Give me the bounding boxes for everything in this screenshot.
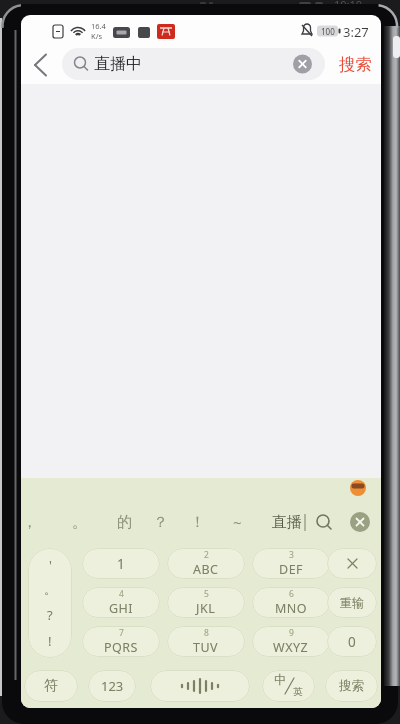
button[interactable] (327, 548, 377, 579)
button[interactable]: ~ (227, 504, 247, 540)
staticText: 英 (293, 686, 303, 698)
staticText: 。 (72, 513, 87, 532)
button[interactable]: 4 (82, 587, 160, 618)
button[interactable] (150, 670, 250, 702)
button[interactable]: 2 (167, 548, 245, 579)
staticText: 9 (289, 627, 294, 639)
staticText: ， (22, 513, 37, 532)
staticText: MNO (275, 600, 308, 617)
staticText: 。 (44, 582, 56, 597)
staticText: ~ (233, 512, 242, 532)
staticText: 8 (204, 627, 209, 639)
staticText: 10:10 (334, 0, 363, 11)
button[interactable]: 9 (252, 626, 330, 657)
button[interactable] (291, 53, 314, 76)
staticText: GHI (109, 600, 134, 617)
button[interactable]: 符 (24, 670, 78, 702)
staticText: 符 (44, 677, 58, 695)
staticText: 的 (117, 513, 132, 532)
button[interactable]: 1 (82, 548, 160, 579)
staticText: 100 (321, 26, 335, 37)
staticText: ' (49, 556, 52, 574)
staticText: JKL (196, 600, 216, 617)
staticText: TUV (193, 639, 219, 656)
staticText: 搜索 (339, 678, 364, 694)
staticText: ？ (153, 513, 168, 532)
staticText: 4 (119, 588, 124, 600)
staticText: 直播中 (94, 54, 142, 74)
staticText: PQRS (104, 639, 138, 656)
button[interactable]: 直播 (272, 504, 302, 540)
button[interactable]: 的 (114, 504, 134, 540)
button[interactable]: ？ (150, 504, 170, 540)
button[interactable] (349, 479, 367, 497)
button[interactable] (62, 48, 325, 80)
button[interactable]: 中 (262, 670, 315, 702)
staticText: ！ (190, 513, 205, 532)
staticText: 6 (289, 588, 294, 600)
staticText: ABC (193, 561, 219, 578)
button[interactable]: 5 (167, 587, 245, 618)
staticText: 搜索 (339, 54, 372, 75)
button[interactable]: ' (28, 548, 72, 658)
staticText: ! (48, 632, 52, 650)
button[interactable] (313, 510, 337, 534)
staticText: K/s (91, 31, 103, 41)
button[interactable]: 7 (82, 626, 160, 657)
staticText: WXYZ (273, 639, 309, 656)
button[interactable]: ， (21, 504, 39, 540)
button[interactable] (349, 511, 371, 533)
button[interactable]: 搜索 (334, 48, 376, 80)
staticText: 直播 (272, 513, 302, 532)
button[interactable]: 。 (69, 504, 89, 540)
staticText: 3 (289, 549, 294, 561)
staticText: 5 (204, 588, 209, 600)
staticText: 重输 (340, 595, 364, 610)
button[interactable]: 123 (88, 670, 136, 702)
staticText: DEF (279, 561, 304, 578)
button[interactable]: 8 (167, 626, 245, 657)
staticText: 3:27 (343, 23, 369, 37)
button[interactable]: 6 (252, 587, 330, 618)
button[interactable] (27, 48, 59, 80)
button[interactable]: 重输 (327, 587, 377, 618)
staticText: ? (47, 606, 53, 624)
staticText: 0 (348, 633, 356, 651)
button[interactable]: 3 (252, 548, 330, 579)
staticText: 16.4 (91, 21, 106, 31)
staticText: 中 (274, 672, 287, 688)
button[interactable]: 0 (327, 626, 377, 657)
staticText: 2 (204, 549, 209, 561)
staticText: 7 (119, 627, 124, 639)
staticText: 1 (117, 555, 125, 573)
button[interactable]: ！ (187, 504, 207, 540)
staticText: 123 (101, 677, 124, 695)
button[interactable]: 搜索 (325, 670, 378, 702)
